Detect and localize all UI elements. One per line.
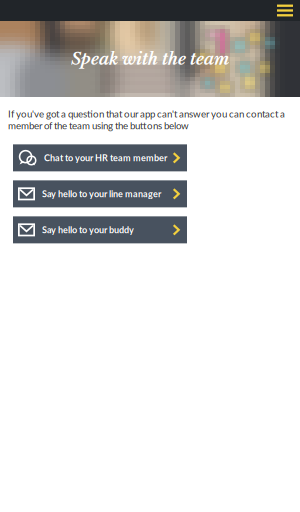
staticText: If you've got a question that our app ca… <box>8 108 285 131</box>
button[interactable]: Menu <box>277 1 300 20</box>
button[interactable]: Chat to your HR team member <box>13 144 187 171</box>
staticText: Say hello to your line manager <box>42 188 161 199</box>
button[interactable]: Say hello to your line manager <box>13 180 187 207</box>
staticText: Say hello to your buddy <box>42 224 134 235</box>
staticText: Chat to your HR team member <box>44 152 167 163</box>
staticText: Speak with the team <box>71 49 229 69</box>
button[interactable]: Say hello to your buddy <box>13 216 187 243</box>
